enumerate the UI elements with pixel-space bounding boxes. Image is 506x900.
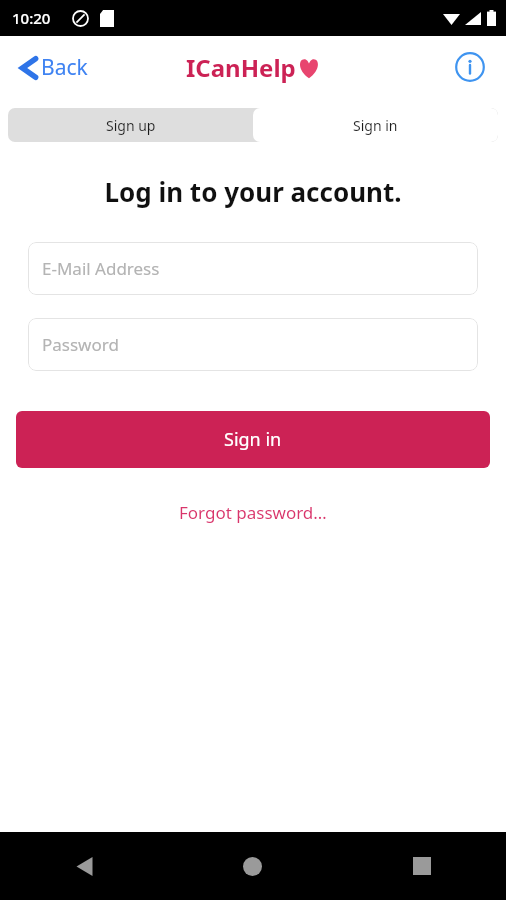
button[interactable]: Back bbox=[16, 47, 92, 88]
button[interactable]: Sign up bbox=[8, 108, 253, 142]
staticText: Forgot password… bbox=[179, 501, 327, 524]
button[interactable]: E-Mail Address bbox=[28, 242, 478, 295]
staticText: Password bbox=[42, 333, 119, 356]
button[interactable]: Sign in bbox=[16, 411, 490, 468]
button[interactable]: Recent apps bbox=[337, 832, 506, 900]
button[interactable]: Info bbox=[450, 47, 490, 87]
button[interactable]: Home bbox=[168, 832, 337, 900]
button[interactable]: Back bbox=[0, 832, 168, 900]
staticText: ICanHelp bbox=[186, 51, 296, 84]
staticText: Sign in bbox=[353, 116, 398, 135]
button[interactable]: Sign in bbox=[253, 108, 498, 142]
staticText: 10:20 bbox=[12, 8, 51, 28]
button[interactable]: Password bbox=[28, 318, 478, 371]
staticText: Sign up bbox=[106, 116, 156, 135]
button[interactable]: Forgot password… bbox=[0, 501, 506, 524]
staticText: Back bbox=[41, 53, 88, 82]
staticText: Sign in bbox=[224, 427, 282, 452]
staticText: E-Mail Address bbox=[42, 257, 160, 280]
staticText: Log in to your account. bbox=[0, 174, 506, 209]
